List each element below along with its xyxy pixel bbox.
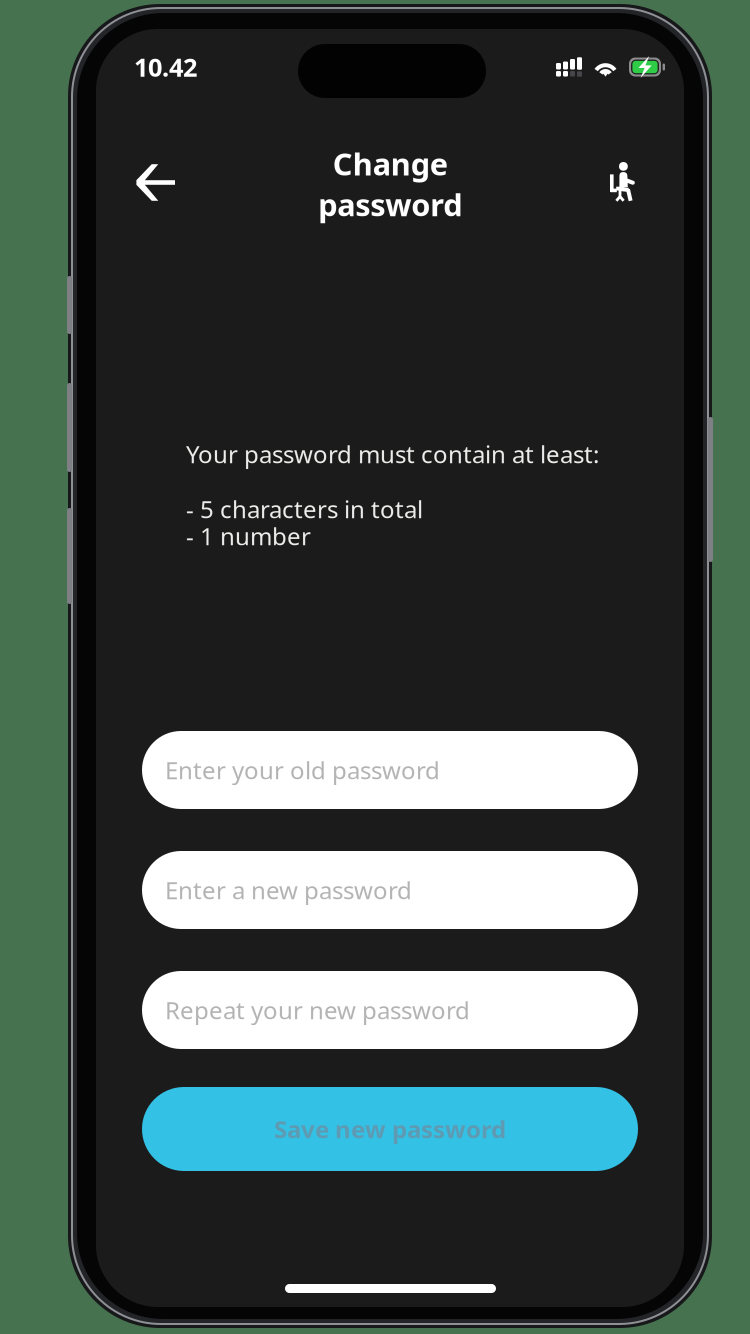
staticText: - 5 characters in total [186, 493, 423, 525]
staticText: Save new password [274, 1113, 506, 1145]
button[interactable]: Seated passenger [601, 147, 644, 209]
button[interactable]: Save new password [142, 1087, 638, 1171]
staticText: Repeat your new password [165, 994, 470, 1026]
button[interactable]: Back [128, 156, 183, 209]
button[interactable]: Enter your old password [142, 731, 638, 809]
staticText: Change password [318, 143, 462, 225]
button[interactable]: Repeat your new password [142, 971, 638, 1049]
staticText: Enter your old password [165, 754, 440, 786]
staticText: Enter a new password [165, 874, 412, 906]
button[interactable]: Enter a new password [142, 851, 638, 929]
staticText: - 1 number [186, 520, 311, 552]
staticText: Your password must contain at least: [186, 438, 599, 470]
staticText: 10.42 [134, 50, 197, 84]
